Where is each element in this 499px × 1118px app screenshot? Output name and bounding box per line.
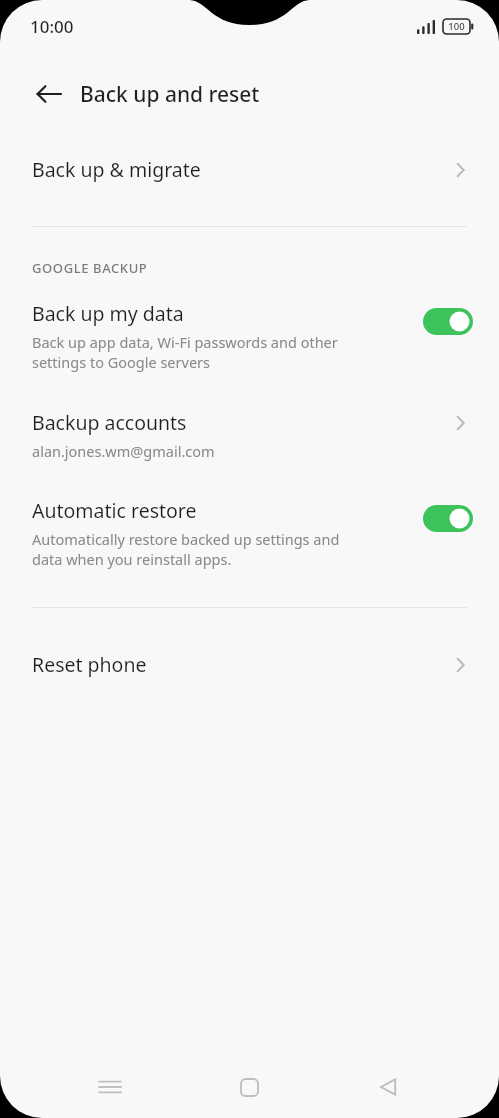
button[interactable]: Toggle bbox=[423, 505, 473, 532]
button[interactable]: Back bbox=[22, 68, 76, 120]
staticText: GOOGLE BACKUP bbox=[32, 259, 148, 277]
staticText: Automatically restore backed up settings… bbox=[32, 529, 340, 570]
button[interactable]: Back bbox=[360, 1059, 416, 1115]
button[interactable]: Back up & migrate bbox=[0, 156, 499, 183]
button[interactable]: Recents bbox=[82, 1059, 138, 1115]
staticText: Back up app data, Wi-Fi passwords and ot… bbox=[32, 332, 338, 373]
button[interactable]: Back up my data bbox=[0, 300, 499, 373]
staticText: 100 bbox=[448, 20, 465, 33]
staticText: Backup accounts bbox=[32, 409, 187, 436]
staticText: Back up & migrate bbox=[32, 156, 201, 183]
button[interactable]: Backup accounts bbox=[0, 409, 499, 461]
staticText: Reset phone bbox=[32, 651, 147, 678]
button[interactable]: Toggle bbox=[423, 308, 473, 335]
staticText: Back up and reset bbox=[80, 80, 260, 109]
button[interactable]: Home bbox=[221, 1059, 277, 1115]
staticText: Automatic restore bbox=[32, 497, 197, 524]
staticText: alan.jones.wm@gmail.com bbox=[32, 441, 215, 461]
button[interactable]: Automatic restore bbox=[0, 497, 499, 570]
staticText: 10:00 bbox=[30, 15, 74, 38]
staticText: Back up my data bbox=[32, 300, 184, 327]
button[interactable]: Reset phone bbox=[0, 651, 499, 678]
